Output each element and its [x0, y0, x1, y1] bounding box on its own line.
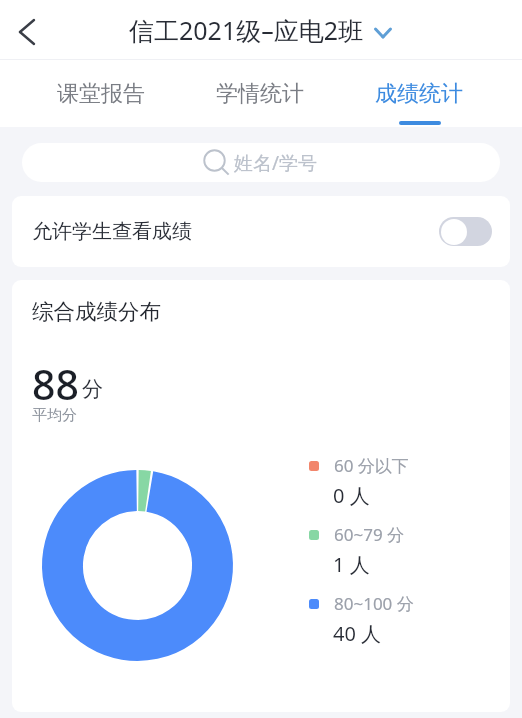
button[interactable]: 成绩统计 — [357, 60, 482, 127]
staticText: 姓名/学号 — [234, 150, 318, 176]
button[interactable]: 学情统计 — [198, 60, 323, 127]
button[interactable]: 姓名/学号 — [22, 143, 500, 182]
staticText: 课堂报告 — [57, 80, 145, 108]
button[interactable]: 允许学生查看成绩 — [12, 196, 510, 267]
staticText: 平均分 — [32, 406, 77, 425]
staticText: 允许学生查看成绩 — [32, 219, 192, 244]
staticText: 成绩统计 — [375, 80, 463, 108]
staticText: 88 — [32, 356, 79, 412]
staticText: 学情统计 — [216, 80, 304, 108]
staticText: 1 人 — [333, 551, 370, 578]
staticText: 综合成绩分布 — [32, 298, 161, 325]
button[interactable]: Allow students to view grades — [439, 217, 492, 246]
staticText: 40 人 — [333, 620, 382, 647]
button[interactable]: 课堂报告 — [39, 60, 164, 127]
button[interactable]: Back — [4, 9, 50, 55]
staticText: 80~100 分 — [334, 592, 414, 615]
staticText: 60~79 分 — [334, 523, 405, 546]
staticText: 0 人 — [333, 482, 370, 509]
button[interactable]: 信工2021级–应电2班 — [129, 13, 394, 47]
staticText: 分 — [82, 376, 103, 402]
staticText: 60 分以下 — [334, 454, 409, 477]
staticText: 信工2021级–应电2班 — [129, 13, 364, 47]
